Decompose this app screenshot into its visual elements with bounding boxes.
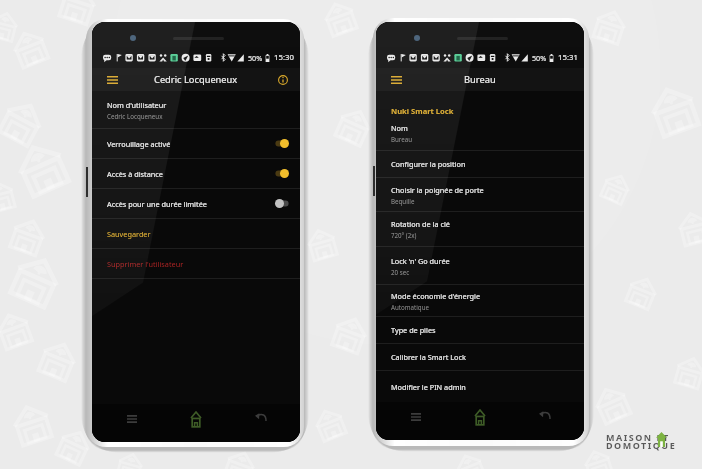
button[interactable]: Accès à distance: [92, 159, 300, 188]
staticText: DOMOTIQUE: [606, 439, 677, 451]
button[interactable]: Information: [274, 71, 292, 89]
staticText: 720° (2x): [391, 231, 417, 239]
button[interactable]: Supprimer l'utilisateur: [92, 249, 300, 278]
staticText: Lock 'n' Go durée: [391, 256, 450, 266]
button[interactable]: Lock 'n' Go durée: [376, 247, 584, 284]
staticText: Cedric Locqueneux: [154, 73, 238, 86]
button[interactable]: Open navigation menu: [387, 71, 405, 89]
button[interactable]: Nom: [376, 116, 584, 150]
staticText: Bequille: [391, 197, 415, 205]
button[interactable]: Nom d'utilisateur: [92, 91, 300, 128]
button[interactable]: Open navigation menu: [103, 71, 121, 89]
button[interactable]: Choisir la poignée de porte: [376, 178, 584, 211]
button[interactable]: Verrouillage activé: [92, 129, 300, 158]
staticText: 50%: [532, 53, 547, 63]
staticText: Rotation de la clé: [391, 219, 450, 229]
staticText: Verrouillage activé: [107, 139, 275, 149]
staticText: Automatique: [391, 303, 429, 311]
button[interactable]: Type de piles: [376, 317, 584, 343]
button[interactable]: Rotation de la clé: [376, 212, 584, 246]
button[interactable]: Back: [512, 402, 576, 432]
button[interactable]: Calibrer la Smart Lock: [376, 344, 584, 370]
staticText: Sauvegarder: [107, 229, 151, 239]
staticText: Mode économie d'énergie: [391, 291, 481, 301]
staticText: Modifier le PIN admin: [391, 382, 466, 392]
staticText: 50%: [248, 53, 263, 63]
button[interactable]: Recent apps: [100, 404, 164, 434]
staticText: Nom: [391, 123, 408, 133]
staticText: Accès pour une durée limitée: [107, 199, 275, 209]
staticText: Configurer la position: [391, 159, 466, 169]
staticText: Choisir la poignée de porte: [391, 185, 484, 195]
staticText: 15:31: [558, 52, 578, 63]
button[interactable]: Modifier le PIN admin: [376, 371, 584, 402]
button[interactable]: Configurer la position: [376, 151, 584, 177]
staticText: Nuki Smart Lock: [391, 106, 454, 116]
staticText: 15:30: [274, 52, 294, 63]
button[interactable]: Sauvegarder: [92, 219, 300, 248]
button[interactable]: Home: [164, 404, 228, 434]
button[interactable]: Accès pour une durée limitée: [92, 189, 300, 218]
staticText: Cedric Locqueneux: [107, 112, 163, 120]
staticText: MAISON ET: [606, 431, 670, 443]
staticText: Bureau: [391, 135, 413, 143]
button[interactable]: Back: [228, 404, 292, 434]
staticText: Bureau: [464, 73, 496, 86]
staticText: Type de piles: [391, 325, 436, 335]
button[interactable]: Home: [448, 402, 512, 432]
button[interactable]: Recent apps: [384, 402, 448, 432]
staticText: Accès à distance: [107, 169, 275, 179]
button[interactable]: Mode économie d'énergie: [376, 285, 584, 316]
staticText: Nom d'utilisateur: [107, 100, 167, 110]
staticText: Supprimer l'utilisateur: [107, 259, 184, 269]
staticText: Calibrer la Smart Lock: [391, 352, 466, 362]
staticText: 20 sec: [391, 268, 410, 276]
